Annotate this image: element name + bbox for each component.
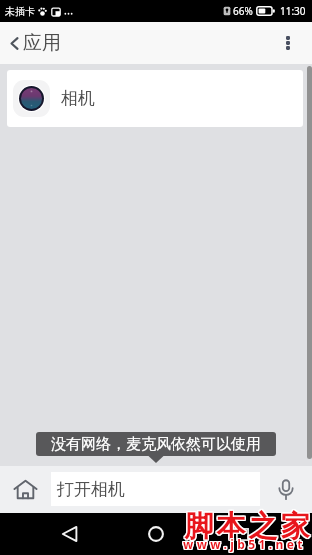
button[interactable]: Back: [0, 23, 156, 63]
button[interactable]: Recents: [217, 513, 267, 555]
staticText: 打开相机: [57, 479, 125, 500]
button[interactable]: Home: [0, 466, 51, 513]
staticText: www.jb51.net: [182, 537, 305, 553]
staticText: www.jb51.net: [183, 535, 306, 551]
staticText: 相机: [61, 88, 95, 109]
staticText: www.jb51.net: [183, 536, 306, 552]
staticText: 没有网络，麦克风依然可以使用: [51, 435, 261, 454]
staticText: 未插卡: [5, 5, 35, 18]
staticText: 66%: [233, 4, 253, 18]
staticText: 脚本之家: [184, 507, 312, 544]
button[interactable]: Back: [45, 513, 95, 555]
staticText: www.jb51.net: [182, 535, 305, 551]
staticText: 脚本之家: [184, 508, 312, 545]
staticText: www.jb51.net: [183, 536, 306, 552]
staticText: 脚本之家: [182, 509, 310, 546]
button[interactable]: Voice input: [260, 466, 312, 513]
staticText: 脚本之家: [182, 508, 310, 545]
button[interactable]: More options: [272, 26, 312, 60]
staticText: 11:30: [280, 4, 306, 18]
button[interactable]: 打开相机: [51, 472, 260, 506]
staticText: 脚本之家: [183, 507, 311, 544]
staticText: www.jb51.net: [184, 536, 307, 552]
staticText: 脚本之家: [183, 509, 311, 546]
other: Back: [7, 36, 22, 51]
staticText: www.jb51.net: [183, 537, 306, 553]
staticText: www.jb51.net: [184, 537, 307, 553]
staticText: 脚本之家: [183, 508, 311, 545]
staticText: 脚本之家: [183, 508, 311, 545]
button[interactable]: 相机: [7, 70, 303, 127]
staticText: 应用: [23, 31, 61, 55]
staticText: 脚本之家: [182, 507, 310, 544]
staticText: www.jb51.net: [184, 535, 307, 551]
staticText: 脚本之家: [184, 509, 312, 546]
button[interactable]: Home: [131, 513, 181, 555]
staticText: www.jb51.net: [182, 536, 305, 552]
